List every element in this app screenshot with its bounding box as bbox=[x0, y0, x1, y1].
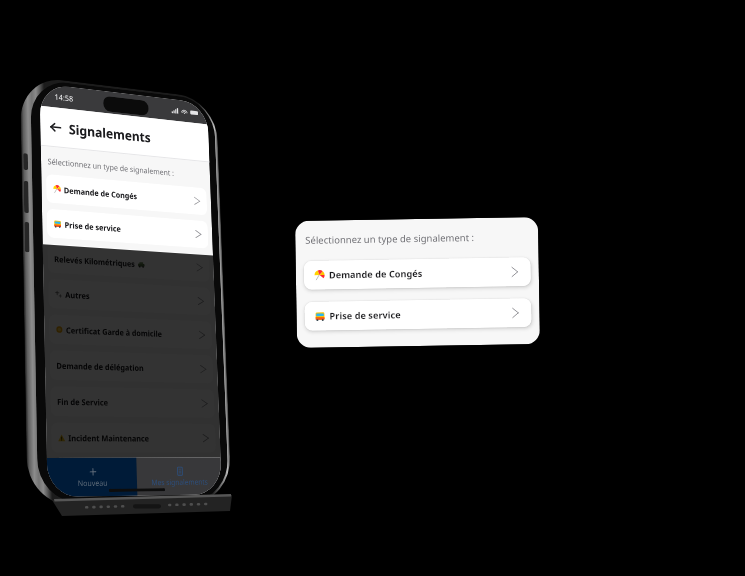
button[interactable]: Demande de délégation bbox=[49, 350, 214, 384]
staticText: Autres bbox=[65, 289, 90, 301]
button[interactable]: Prise de service bbox=[304, 298, 532, 331]
button[interactable]: Incident Maintenance bbox=[51, 422, 216, 453]
button[interactable]: Prise de service bbox=[47, 208, 209, 249]
staticText: Demande de Congés bbox=[64, 184, 138, 201]
staticText: Signalements bbox=[69, 119, 151, 146]
staticText: Incident Maintenance bbox=[68, 432, 149, 443]
button[interactable]: Fin de Service bbox=[50, 386, 215, 418]
staticText: Certificat Garde à domicile bbox=[66, 324, 163, 339]
button[interactable]: Demande de Congés bbox=[304, 257, 531, 290]
staticText: Demande de Congés bbox=[329, 267, 423, 281]
staticText: Sélectionnez un type de signalement : bbox=[47, 155, 175, 178]
staticText: Fin de Service bbox=[57, 395, 108, 408]
staticText: Prise de service bbox=[64, 219, 121, 234]
button[interactable]: Volume down bbox=[24, 222, 30, 252]
staticText: Demande de délégation bbox=[56, 359, 144, 373]
button[interactable]: Nouveau bbox=[47, 458, 137, 497]
staticText: Mes signalements bbox=[151, 476, 208, 487]
button[interactable]: Relevés Kilométriques bbox=[47, 243, 210, 282]
staticText: 14:58 bbox=[54, 91, 74, 104]
button[interactable]: Action button bbox=[23, 153, 28, 170]
staticText: Sélectionnez un type de signalement : bbox=[305, 231, 474, 247]
button[interactable]: Certificat Garde à domicile bbox=[49, 314, 212, 349]
button[interactable]: Autres bbox=[48, 279, 211, 316]
button[interactable]: Demande de Congés bbox=[46, 174, 207, 215]
button[interactable]: Mes signalements bbox=[136, 457, 222, 496]
button[interactable]: Volume up bbox=[24, 181, 29, 213]
staticText: Prise de service bbox=[329, 308, 402, 322]
staticText: Nouveau bbox=[78, 477, 108, 488]
staticText: Relevés Kilométriques bbox=[54, 253, 135, 269]
button[interactable]: Back bbox=[48, 118, 64, 136]
